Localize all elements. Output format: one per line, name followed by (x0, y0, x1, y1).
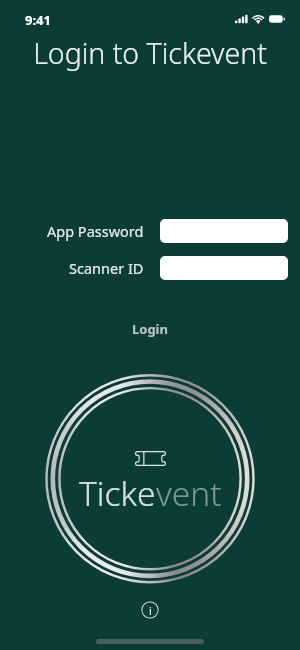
staticText: App Password (47, 221, 144, 241)
staticText: Scanner ID (69, 258, 144, 278)
staticText: 9:41 (25, 11, 51, 29)
staticText: Login to Tickevent (0, 34, 300, 73)
button[interactable]: Login (120, 316, 180, 342)
staticText: i (149, 603, 152, 618)
staticText: Ticke (79, 470, 156, 516)
staticText: Login (132, 320, 168, 338)
staticText: vent (156, 470, 222, 516)
button[interactable]: Info (141, 601, 159, 619)
button[interactable] (160, 219, 288, 243)
button[interactable] (160, 256, 288, 280)
